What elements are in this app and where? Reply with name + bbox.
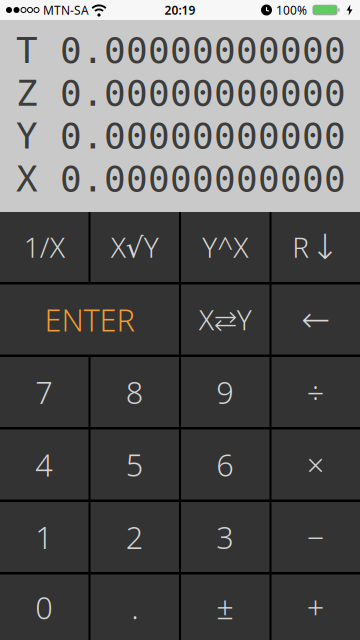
staticText: 9 (216, 372, 234, 412)
staticText: 7 (35, 372, 53, 412)
staticText: ÷ (307, 372, 325, 412)
button[interactable]: 5 (90, 429, 179, 499)
button[interactable]: − (271, 502, 360, 572)
button[interactable]: . (90, 574, 179, 640)
staticText: × (307, 444, 325, 485)
button[interactable]: 2 (90, 502, 179, 572)
button[interactable]: 1 (0, 502, 88, 572)
staticText: + (307, 587, 325, 628)
button[interactable]: X√Y (90, 212, 179, 282)
staticText: X 0.00000000000 (16, 159, 346, 199)
button[interactable]: R (271, 212, 360, 282)
staticText: 20:19 (164, 2, 195, 18)
staticText: 2 (126, 517, 144, 557)
staticText: 4 (35, 444, 53, 485)
staticText: 0 (35, 587, 53, 628)
button[interactable]: X⇄Y (181, 284, 269, 354)
button[interactable]: ÷ (271, 357, 360, 427)
staticText: X√Y (111, 228, 159, 266)
button[interactable]: 3 (181, 502, 269, 572)
staticText: . (131, 587, 138, 628)
staticText: 3 (216, 517, 234, 557)
staticText: 6 (216, 444, 234, 485)
staticText: Y^X (202, 228, 248, 266)
staticText: ENTER (44, 299, 134, 340)
staticText: R (292, 228, 309, 266)
button[interactable]: 7 (0, 357, 88, 427)
button[interactable]: 6 (181, 429, 269, 499)
staticText: Y 0.00000000000 (16, 116, 346, 157)
staticText: 5 (126, 444, 144, 485)
button[interactable]: + (271, 574, 360, 640)
staticText: X⇄Y (199, 301, 252, 338)
button[interactable]: ← (271, 284, 360, 354)
staticText: T 0.00000000000 (16, 30, 346, 71)
button[interactable]: 9 (181, 357, 269, 427)
button[interactable]: 0 (0, 574, 88, 640)
staticText: MTN-SA (43, 2, 89, 18)
staticText: 1/X (24, 228, 65, 266)
staticText: − (307, 517, 325, 557)
button[interactable]: ± (181, 574, 269, 640)
staticText: 8 (126, 372, 144, 412)
button[interactable]: ENTER (0, 284, 179, 354)
button[interactable]: 4 (0, 429, 88, 499)
button[interactable]: 1/X (0, 212, 88, 282)
staticText: ← (301, 300, 330, 339)
staticText: 100% (276, 2, 307, 18)
staticText: ± (216, 587, 234, 628)
button[interactable]: Y^X (181, 212, 269, 282)
staticText: ↓ (310, 227, 339, 267)
staticText: Z 0.00000000000 (16, 73, 346, 114)
button[interactable]: × (271, 429, 360, 499)
staticText: 1 (35, 517, 53, 557)
button[interactable]: 8 (90, 357, 179, 427)
